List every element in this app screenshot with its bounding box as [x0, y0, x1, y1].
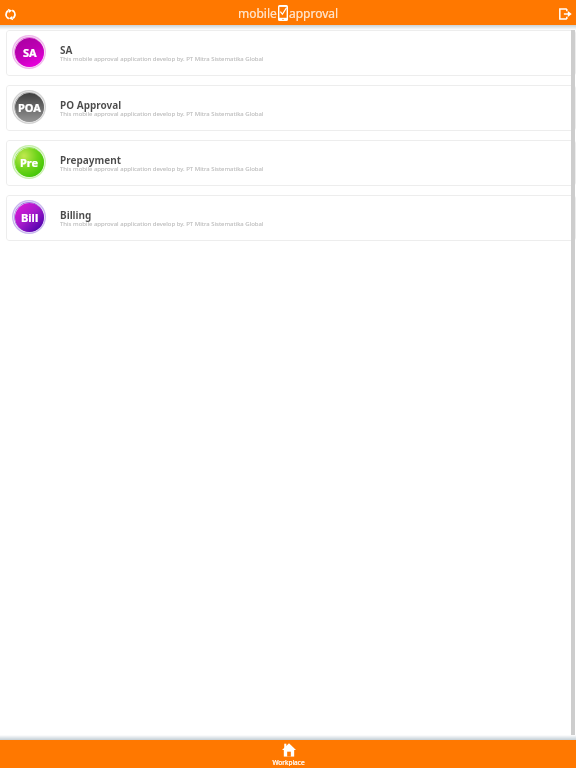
- staticText: Pre: [20, 155, 39, 170]
- button[interactable]: Logout: [551, 0, 576, 25]
- staticText: This mobile approval application develop…: [60, 110, 264, 118]
- staticText: SA: [23, 45, 37, 60]
- staticText: Bill: [21, 210, 39, 225]
- staticText: PO Approval: [60, 98, 122, 112]
- staticText: Workplace: [272, 758, 305, 766]
- button[interactable]: Workplace: [252, 740, 325, 768]
- staticText: Billing: [60, 208, 92, 222]
- button[interactable]: POA: [6, 85, 576, 131]
- staticText: This mobile approval application develop…: [60, 220, 264, 228]
- staticText: This mobile approval application develop…: [60, 55, 264, 63]
- button[interactable]: Refresh: [0, 0, 25, 25]
- staticText: POA: [18, 100, 41, 115]
- staticText: Prepayment: [60, 153, 122, 167]
- staticText: SA: [60, 43, 73, 57]
- staticText: mobile: [238, 5, 277, 21]
- button[interactable]: Bill: [6, 195, 576, 241]
- staticText: approval: [289, 5, 339, 21]
- staticText: This mobile approval application develop…: [60, 165, 264, 173]
- button[interactable]: Pre: [6, 140, 576, 186]
- button[interactable]: SA: [6, 30, 576, 76]
